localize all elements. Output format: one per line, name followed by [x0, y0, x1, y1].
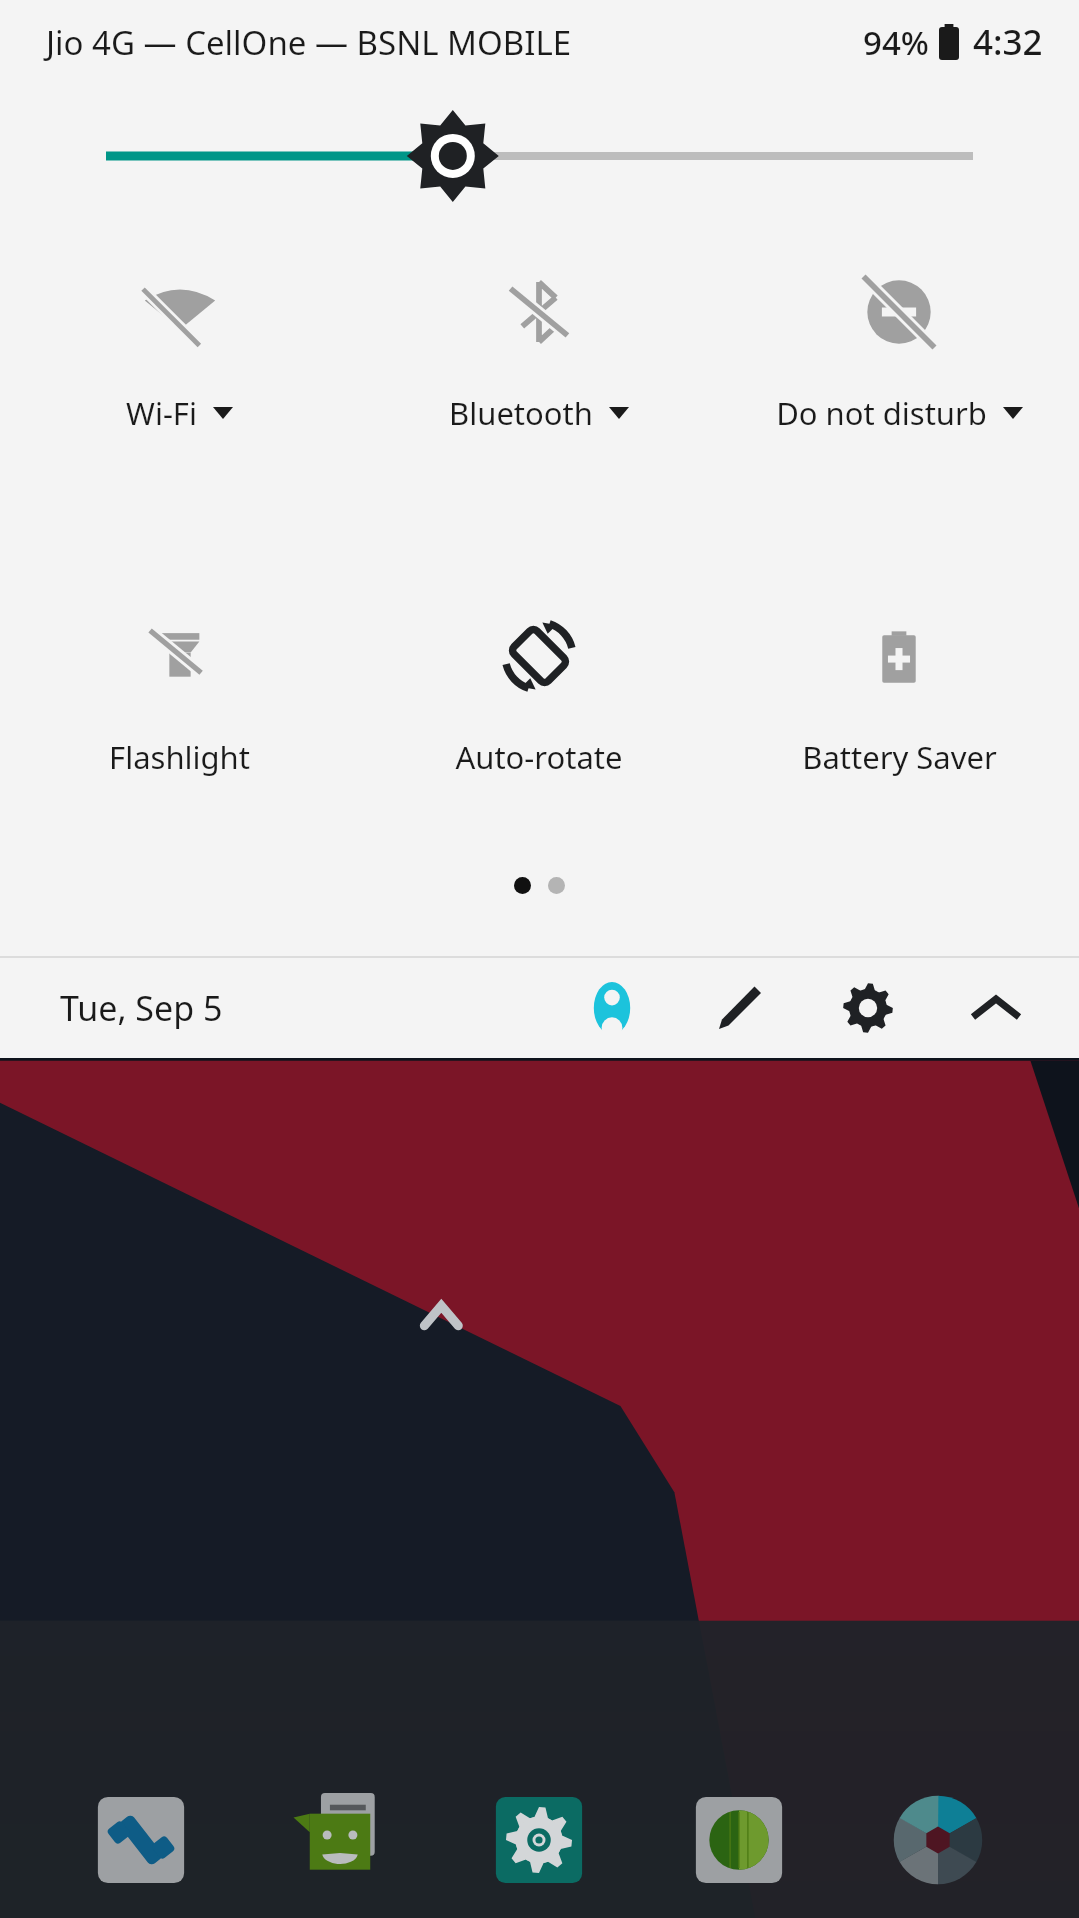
- staticText: Tue, Sep 5: [60, 985, 223, 1031]
- button[interactable]: Do not disturb: [719, 268, 1079, 434]
- button[interactable]: User: [575, 971, 649, 1045]
- button[interactable]: Edit: [703, 971, 777, 1045]
- button[interactable]: Camera: [880, 1782, 996, 1898]
- staticText: 94%: [863, 20, 929, 65]
- button[interactable]: Wi-Fi: [0, 268, 359, 434]
- button[interactable]: Flashlight: [0, 612, 359, 778]
- staticText: Battery Saver: [802, 736, 997, 778]
- staticText: Do not disturb: [776, 392, 987, 434]
- button[interactable]: Brightness: [0, 106, 1079, 202]
- button[interactable]: Settings: [481, 1782, 597, 1898]
- staticText: Flashlight: [109, 736, 250, 778]
- button[interactable]: Bluetooth: [359, 268, 719, 434]
- button[interactable]: Browser: [681, 1782, 797, 1898]
- staticText: Jio 4G — CellOne — BSNL MOBILE: [46, 20, 572, 65]
- button[interactable]: Collapse: [959, 971, 1033, 1045]
- button[interactable]: Auto-rotate: [359, 612, 719, 778]
- staticText: Bluetooth: [449, 392, 593, 434]
- button[interactable]: Messages: [282, 1782, 398, 1898]
- staticText: 4:32: [973, 18, 1043, 66]
- staticText: Wi-Fi: [126, 392, 197, 434]
- button[interactable]: Phone: [83, 1782, 199, 1898]
- button[interactable]: Settings: [831, 971, 905, 1045]
- staticText: Auto-rotate: [455, 736, 623, 778]
- button[interactable]: Battery Saver: [719, 612, 1079, 778]
